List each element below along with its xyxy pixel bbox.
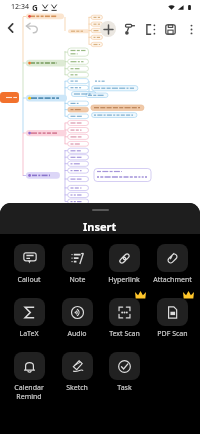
staticText: Attachment bbox=[153, 275, 192, 285]
staticText: Calendar Remind bbox=[14, 383, 44, 401]
button[interactable]: Format painter bbox=[121, 21, 137, 37]
staticText: G bbox=[32, 2, 38, 13]
staticText: Sketch bbox=[66, 383, 88, 393]
button[interactable]: Callout bbox=[5, 244, 53, 292]
button[interactable]: Attachment bbox=[148, 244, 196, 292]
staticText: Hyperlink bbox=[108, 275, 140, 285]
staticText: Task bbox=[117, 383, 132, 393]
staticText: Insert bbox=[83, 219, 117, 234]
staticText: Callout bbox=[17, 275, 41, 285]
button[interactable]: Sketch bbox=[53, 352, 101, 400]
button[interactable]: Back bbox=[3, 20, 19, 36]
staticText: 12:34 bbox=[11, 2, 29, 12]
button[interactable]: Hyperlink bbox=[100, 244, 148, 292]
staticText: PDF Scan bbox=[157, 329, 188, 339]
staticText: Note bbox=[69, 275, 86, 285]
button[interactable]: Text Scan bbox=[100, 298, 148, 346]
button[interactable]: Task bbox=[100, 352, 148, 400]
button[interactable]: LaTeX bbox=[5, 298, 53, 346]
staticText: Audio bbox=[67, 329, 87, 339]
button[interactable]: Undo bbox=[24, 20, 40, 36]
button[interactable]: Select bbox=[142, 21, 158, 37]
button[interactable]: More options bbox=[183, 21, 199, 37]
button[interactable]: Audio bbox=[53, 298, 101, 346]
button[interactable]: Save bbox=[162, 21, 178, 37]
button[interactable]: PDF Scan bbox=[148, 298, 196, 346]
button[interactable]: Add bbox=[100, 21, 116, 37]
staticText: Text Scan bbox=[109, 329, 140, 339]
button[interactable]: Calendar Remind bbox=[5, 352, 53, 400]
button[interactable]: Note bbox=[53, 244, 101, 292]
staticText: LaTeX bbox=[19, 329, 39, 339]
